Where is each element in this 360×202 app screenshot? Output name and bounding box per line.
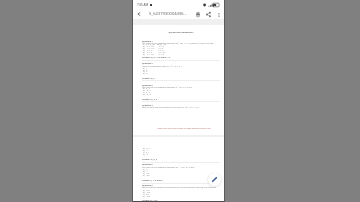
staticText: The roots of the quadratic equation x² -… [142,86,220,89]
staticText: Question 6 [142,184,220,187]
staticText: b) 2 [143,69,221,72]
staticText: a) 1 [143,67,221,70]
staticText: Question 2 [142,62,220,65]
staticText: a) 3 [143,168,221,171]
staticText: a) 2, 3 [143,147,221,150]
staticText: b) -2, 3 [143,89,221,92]
staticText: Question 3 [142,84,220,87]
staticText: c) 2, -3 [143,91,221,94]
button[interactable]: Navigate up [135,10,143,18]
staticText: 5_6237930004496... [149,11,187,17]
staticText: d) -4 [143,153,221,156]
staticText: b) -1 [143,149,221,152]
staticText: What is the greatest value of -x² + 4x +… [142,65,220,68]
staticText: Question 1 [142,40,220,43]
staticText: b) x = -1/3 x = 2 [143,47,169,50]
staticText: b) -3/2 [143,191,221,194]
staticText: Download more worksheets at www.example-… [145,127,223,130]
staticText: Answer: a) 2, 3 [142,98,220,101]
staticText: Question 4 [142,104,220,107]
staticText: a) 3/2 [143,189,221,192]
staticText: 7:55 AM [137,3,149,7]
staticText: c) 1/5 [143,172,221,175]
staticText: c) 2/3 [143,193,221,196]
staticText: b) 2 [143,170,221,173]
staticText: d) 2/5 [143,174,221,177]
staticText: c) 3 [143,70,221,73]
button[interactable]: Print [194,10,202,18]
staticText: Answer: b) -3/2 [142,199,220,202]
staticText: Answer: d) 9 [142,77,220,80]
staticText: Quadratic Equations [142,30,220,33]
staticText: d) 9 [143,72,221,75]
button[interactable]: More options [215,11,222,18]
staticText: The roots of the quadratic equation 5x² … [142,166,220,169]
staticText: a) x = 1/3 x = -2 [143,45,169,48]
staticText: The roots of the quadratic equation ax² … [142,42,220,45]
staticText: d) -2, -3 [143,93,221,96]
staticText: a) 2, 3 [143,87,221,90]
button[interactable]: Edit [206,171,223,188]
staticText: Question 5 [142,163,220,166]
staticText: Answer: c) 1/5 and 3 [142,179,220,182]
staticText: c) 3, 1 [143,151,221,154]
staticText: x = [ -b ± √(b² - 4ac) ] / 2a [143,43,221,46]
staticText: d) x = 3 x = -1/2 [143,51,169,54]
staticText: e) x = 1/2 x = -3 [143,53,169,56]
staticText: Answer: a) x = 1/3 and x = -2 [142,56,220,59]
staticText: Find the sum and the product of the root… [142,106,220,109]
staticText: d) -2/3 [143,195,221,198]
staticText: Solve the given quadratic equation with … [142,186,220,189]
button[interactable]: Share [204,10,212,18]
staticText: Answer: a) 2, 3 [142,158,220,161]
staticText: c) x = 2 x = -3 [143,49,169,52]
